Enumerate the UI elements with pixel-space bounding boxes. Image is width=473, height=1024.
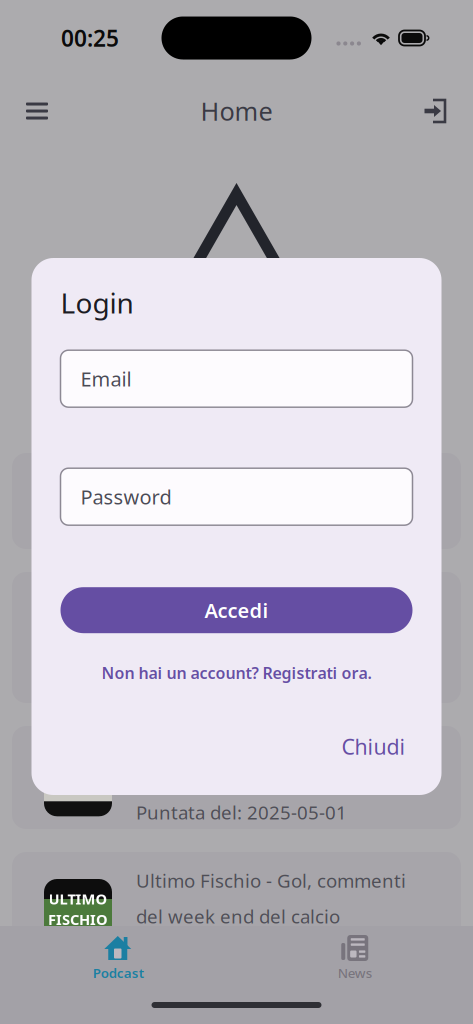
button[interactable]: Podcast: [0, 931, 236, 986]
staticText: Ultimo Fischio - Speciale: [136, 728, 349, 753]
staticText: Puntata del: 2025-05-04: [136, 660, 347, 684]
staticText: Ultimo Fischio - La domenica: [136, 469, 388, 494]
staticText: News: [338, 964, 372, 982]
staticText: Non hai un account? Registrati ora.: [101, 662, 371, 683]
button[interactable]: Accedi: [60, 587, 412, 633]
button[interactable]: News: [236, 931, 473, 986]
staticText: Podcast: [93, 964, 144, 982]
staticText: Puntata del: 2025-05-12: [136, 505, 347, 530]
staticText: FISCHIO: [48, 909, 108, 929]
staticText: Ultimo Fischio - Gol, commenti: [136, 868, 406, 893]
staticText: del week end del calcio: [136, 904, 340, 929]
button[interactable]: SDA: [12, 726, 461, 829]
staticText: italiana, le voci dallo stadio: [136, 624, 370, 649]
staticText: Puntata del: 2025-05-01: [136, 800, 347, 825]
staticText: Email: [80, 365, 131, 392]
staticText: 00:25: [61, 23, 119, 53]
staticText: Login: [60, 284, 133, 321]
staticText: ULTIMO: [48, 889, 107, 908]
staticText: Ultimo Fischio - Speciale coppa: [136, 588, 406, 613]
staticText: Home: [200, 94, 272, 128]
button[interactable]: ULTIMO: [12, 852, 461, 955]
button[interactable]: Chiudi: [335, 726, 411, 767]
button[interactable]: Non hai un account? Registrati ora.: [31, 656, 441, 689]
staticText: Password: [80, 483, 171, 510]
staticText: Chiudi: [341, 732, 405, 761]
button[interactable]: Login: [408, 84, 464, 138]
button[interactable]: Menu: [9, 84, 65, 138]
button[interactable]: Ultimo Fischio - Speciale coppa: [12, 572, 461, 703]
staticText: Accedi: [204, 597, 268, 623]
button[interactable]: Ultimo Fischio - La domenica: [12, 453, 461, 549]
